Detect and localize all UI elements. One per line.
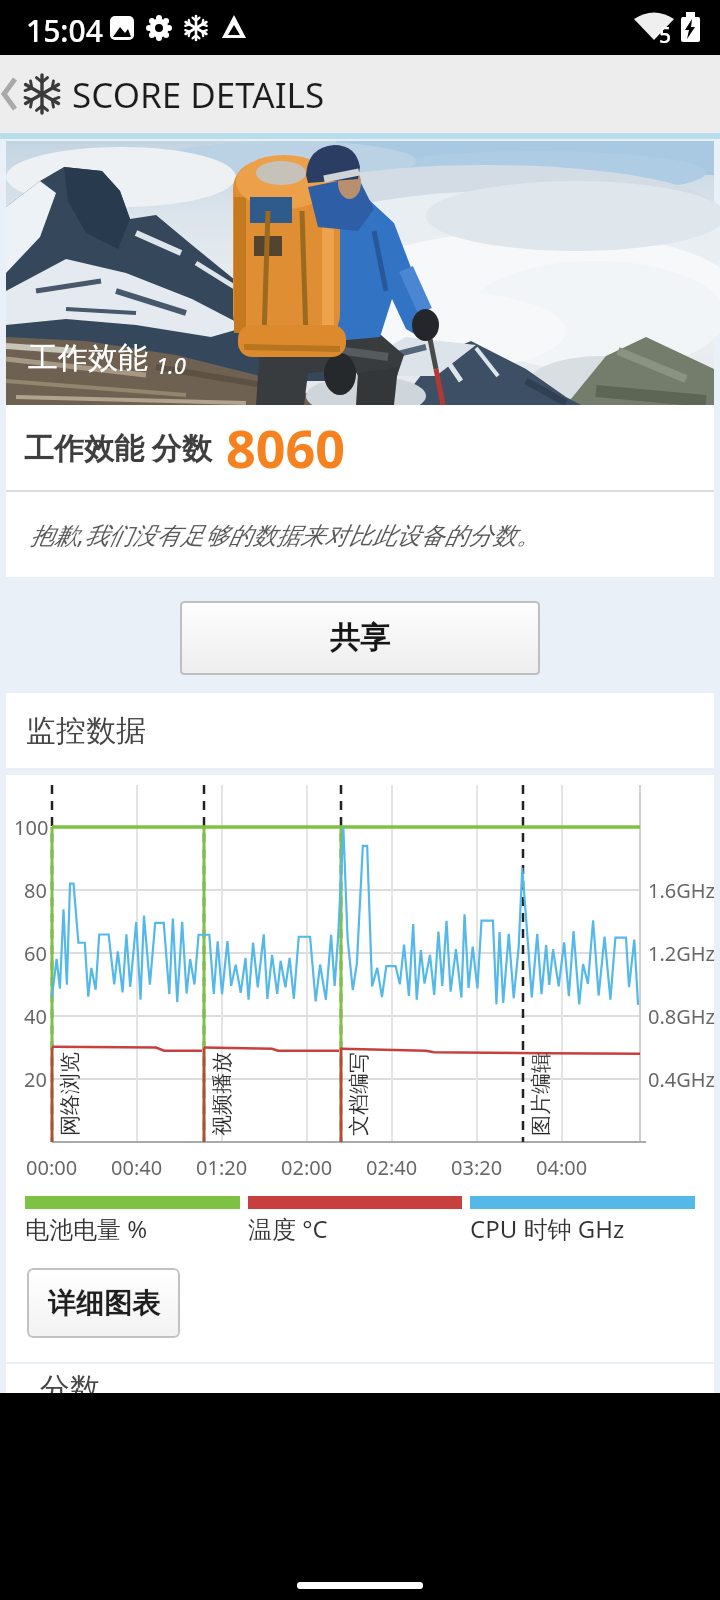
staticText: 02:00: [281, 1154, 333, 1181]
staticText: 00:00: [26, 1154, 78, 1181]
staticText: CPU 时钟 GHz: [470, 1212, 625, 1245]
staticText: 图片编辑: [528, 1052, 554, 1136]
staticText: 40: [24, 1003, 47, 1030]
staticText: 03:20: [451, 1154, 503, 1181]
staticText: 温度 °C: [248, 1212, 328, 1245]
staticText: 详细图表: [48, 1286, 160, 1321]
staticText: 共享: [330, 619, 390, 657]
staticText: 02:40: [366, 1154, 418, 1181]
staticText: 视频播放: [209, 1052, 235, 1136]
staticText: 1.2GHz: [648, 940, 716, 967]
staticText: SCORE DETAILS: [72, 71, 325, 119]
staticText: 8060: [226, 412, 345, 483]
button[interactable]: 详细图表: [27, 1268, 180, 1338]
staticText: 监控数据: [26, 712, 146, 750]
button[interactable]: [297, 1582, 423, 1589]
button[interactable]: [0, 55, 22, 133]
staticText: 抱歉,我们没有足够的数据来对比此设备的分数。: [30, 518, 541, 551]
staticText: 网络浏览: [57, 1052, 83, 1136]
staticText: 01:20: [196, 1154, 248, 1181]
staticText: 电池电量 %: [25, 1212, 148, 1245]
staticText: 80: [24, 877, 47, 904]
button[interactable]: 共享: [180, 601, 540, 675]
staticText: 0.8GHz: [648, 1003, 716, 1030]
staticText: 工作效能 分数: [24, 427, 212, 468]
staticText: 分数: [40, 1370, 100, 1393]
staticText: 100: [14, 814, 49, 841]
staticText: 1.6GHz: [648, 877, 716, 904]
staticText: 1.0: [156, 350, 186, 380]
staticText: 00:40: [111, 1154, 163, 1181]
staticText: 0.4GHz: [648, 1066, 716, 1093]
staticText: 04:00: [536, 1154, 588, 1181]
staticText: 文档编写: [346, 1052, 372, 1136]
staticText: 20: [24, 1066, 47, 1093]
staticText: 15:04: [26, 10, 103, 51]
staticText: 60: [24, 940, 47, 967]
staticText: 5: [659, 21, 672, 50]
staticText: 工作效能: [28, 339, 148, 377]
